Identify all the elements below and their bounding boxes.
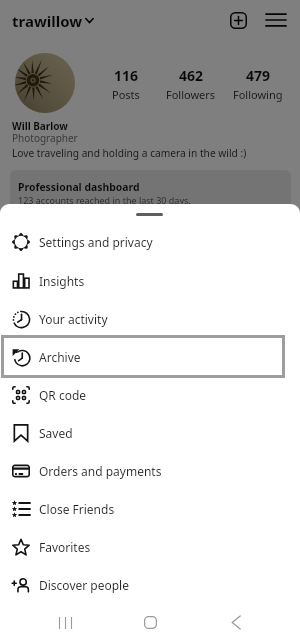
staticText: Followers [166, 87, 216, 102]
button[interactable]: Close Friends [0, 490, 300, 528]
staticText: Love traveling and holding a camera in t… [12, 146, 247, 160]
button[interactable]: Insights [0, 262, 300, 300]
button[interactable]: Professional dashboard [10, 170, 291, 215]
button[interactable]: Menu [266, 12, 286, 28]
staticText: Your activity [39, 311, 108, 327]
staticText: 116 [114, 66, 139, 85]
button[interactable]: Recent apps [58, 617, 73, 629]
button[interactable]: Profile photo [15, 53, 75, 113]
button[interactable]: QR code [0, 376, 300, 414]
staticText: Close Friends [39, 501, 115, 517]
button[interactable]: Orders and payments [0, 452, 300, 490]
staticText: Photographer [12, 131, 78, 145]
staticText: trawillow [12, 11, 83, 29]
staticText: 123 accounts reached in the last 30 days… [18, 194, 191, 206]
staticText: Posts [112, 87, 140, 102]
staticText: Orders and payments [39, 463, 162, 479]
staticText: QR code [39, 387, 87, 403]
staticText: Will Barlow [12, 119, 68, 133]
staticText: 479 [246, 66, 271, 85]
staticText: Following [233, 87, 283, 102]
button[interactable]: Discover people [0, 566, 300, 604]
button[interactable]: 462 [151, 66, 231, 102]
staticText: Professional dashboard [18, 180, 140, 194]
button[interactable]: 116 [86, 66, 166, 102]
button[interactable]: Favorites [0, 528, 300, 566]
staticText: Archive [39, 349, 81, 365]
button[interactable]: Your activity [0, 300, 300, 338]
button[interactable]: Back [231, 615, 241, 630]
button[interactable]: 479 [218, 66, 298, 102]
button[interactable]: Archive [0, 338, 300, 376]
button[interactable]: trawillow [12, 11, 94, 29]
staticText: Settings and privacy [39, 234, 153, 250]
staticText: Favorites [39, 539, 91, 555]
staticText: Saved [39, 425, 73, 441]
button[interactable]: New post [230, 12, 247, 29]
button[interactable]: Home [144, 616, 157, 629]
button[interactable]: Saved [0, 414, 300, 452]
staticText: Discover people [39, 577, 129, 593]
staticText: Insights [39, 273, 85, 289]
staticText: 462 [179, 66, 204, 85]
button[interactable]: Settings and privacy [0, 223, 300, 261]
